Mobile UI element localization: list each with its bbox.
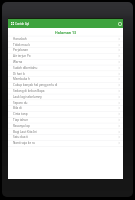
button[interactable]: Satu dua ti <box>8 134 123 140</box>
button[interactable]: Cinta tanp <box>8 111 123 117</box>
button[interactable]: Cukup banyak hal yang perlu di <box>8 82 123 88</box>
button[interactable]: Lauk lagi sebelumny <box>8 94 123 100</box>
staticText: Halaman 13 <box>55 30 77 35</box>
staticText: Tiap tahun <box>13 118 29 122</box>
staticText: Membuka h <box>13 77 30 81</box>
button[interactable]: Air terjun Po <box>8 53 123 59</box>
button[interactable]: Tidak mau k <box>8 42 123 48</box>
staticText: Air terjun Po <box>13 54 31 58</box>
button[interactable]: Nanti saja ke ru <box>8 140 123 146</box>
staticText: Nanti saja ke ru <box>13 141 35 145</box>
button[interactable]: Sudah diberitahu <box>8 65 123 71</box>
button[interactable]: Warna <box>8 59 123 65</box>
button[interactable]: Tiap tahun <box>8 117 123 123</box>
staticText: Tidak mau k <box>13 43 31 47</box>
button[interactable]: Sedang di kebun Bapa <box>8 88 123 94</box>
button[interactable]: Rasanya lap <box>8 123 123 129</box>
staticText: Bila di <box>13 106 22 110</box>
staticText: Bagi Laut Kita Ini <box>13 130 37 134</box>
staticText: Sedang di kebun Bapa <box>13 89 45 93</box>
button[interactable]: Separo du <box>8 100 123 106</box>
staticText: Contoh Apl <box>15 22 30 26</box>
staticText: Cinta tanp <box>13 112 28 116</box>
button[interactable]: Di hari b <box>8 71 123 77</box>
button[interactable]: Bila di <box>8 105 123 111</box>
staticText: Di hari b <box>13 72 25 76</box>
staticText: Haruskah <box>13 37 27 41</box>
button[interactable]: Haruskah <box>8 36 123 42</box>
staticText: Separo du <box>13 101 28 105</box>
staticText: Perjalanan <box>13 48 29 52</box>
button[interactable]: More options <box>118 22 122 26</box>
staticText: Rasanya lap <box>13 124 30 128</box>
staticText: Satu dua ti <box>13 135 29 139</box>
staticText: Cukup banyak hal yang perlu di <box>13 83 58 87</box>
button[interactable]: Bagi Laut Kita Ini <box>8 129 123 135</box>
staticText: Warna <box>13 60 23 64</box>
staticText: Lauk lagi sebelumny <box>13 95 42 99</box>
staticText: Sudah diberitahu <box>13 66 38 70</box>
button[interactable]: Perjalanan <box>8 47 123 53</box>
button[interactable]: Membuka h <box>8 76 123 82</box>
button[interactable]: Menu <box>11 22 14 25</box>
